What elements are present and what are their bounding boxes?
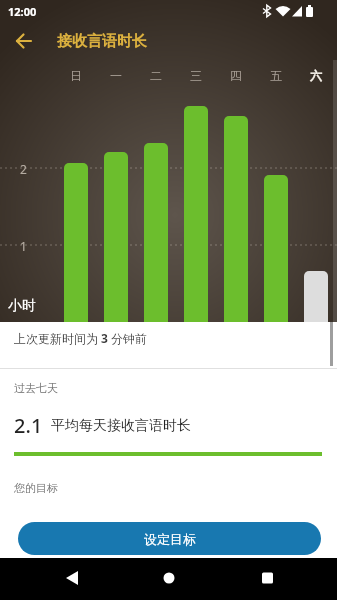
staticText: 三	[190, 68, 202, 83]
button[interactable]	[225, 558, 337, 600]
button[interactable]	[4, 27, 44, 55]
button[interactable]: 设定目标	[18, 522, 321, 555]
staticText: 五	[270, 68, 282, 83]
staticText: 接收言语时长	[57, 32, 147, 51]
staticText: 小时	[8, 297, 36, 315]
staticText: 一	[110, 68, 122, 83]
staticText: 四	[230, 68, 242, 83]
staticText: 2	[20, 161, 27, 177]
staticText: 设定目标	[144, 531, 196, 547]
staticText: 您的目标	[14, 481, 58, 495]
button[interactable]	[0, 558, 113, 600]
staticText: 过去七天	[14, 381, 58, 395]
staticText: 12:00	[8, 4, 37, 19]
staticText: 六	[310, 68, 322, 83]
staticText: 日	[70, 68, 82, 83]
staticText: 上次更新时间为 3 分钟前	[14, 330, 148, 346]
staticText: 1	[20, 238, 27, 254]
staticText: 平均每天接收言语时长	[51, 417, 191, 435]
button[interactable]	[113, 558, 225, 600]
staticText: 2.1	[14, 412, 43, 439]
staticText: 二	[150, 68, 162, 83]
